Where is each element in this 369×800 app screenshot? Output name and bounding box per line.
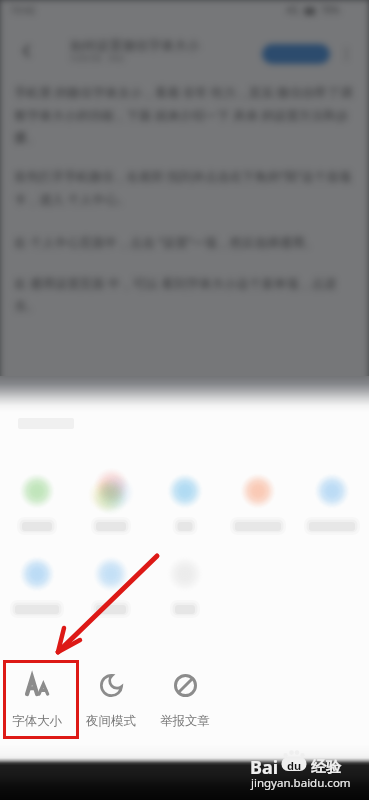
staticText: jingyan.baidu.com — [251, 775, 351, 791]
staticText: Bai — [250, 755, 279, 780]
button[interactable]: 新浪微博 — [295, 467, 369, 537]
button[interactable]: Font size — [0, 655, 74, 743]
staticText: 首先打开手机微信，在底部 找到并点击右下角的“我”这个选项卡，进入 个人中心。 — [14, 168, 356, 208]
button[interactable]: 复制链接 — [0, 550, 74, 620]
staticText: 举报文章 — [160, 713, 210, 729]
staticText: 4G ▮▮ 78% — [286, 3, 341, 17]
staticText: 经验 — [311, 758, 341, 777]
staticText: 夜间模式 — [86, 713, 136, 729]
staticText: du — [287, 758, 302, 773]
button[interactable]: QQ — [148, 467, 222, 537]
staticText: 如何设置微信字体大小 — [70, 37, 200, 53]
staticText: 在 通用设置页面 中，可以 看到字体大小这个菜单项，点进去。 — [14, 275, 356, 314]
button[interactable]: 朋友圈 — [74, 467, 148, 537]
button[interactable]: QQ空间 — [221, 467, 295, 537]
staticText: 在 个人中心页面中，点击 “设置”一项，然后选择通用。 — [14, 234, 317, 251]
button[interactable]: Night mode — [74, 655, 148, 743]
other: Night mode — [100, 674, 123, 697]
button[interactable]: 保存图片 — [148, 550, 222, 620]
staticText: 手机里 的微信字体太小，看着 非常 吃力，其实 微信自带了调整字体大小的功能，下… — [14, 84, 356, 146]
button[interactable]: 微信 — [0, 467, 74, 537]
other: Report article — [174, 674, 197, 697]
other: Font size — [25, 675, 49, 696]
button[interactable]: 更多分享 — [74, 550, 148, 620]
staticText: 字体大小 — [12, 713, 62, 729]
button[interactable]: Report article — [148, 655, 222, 743]
